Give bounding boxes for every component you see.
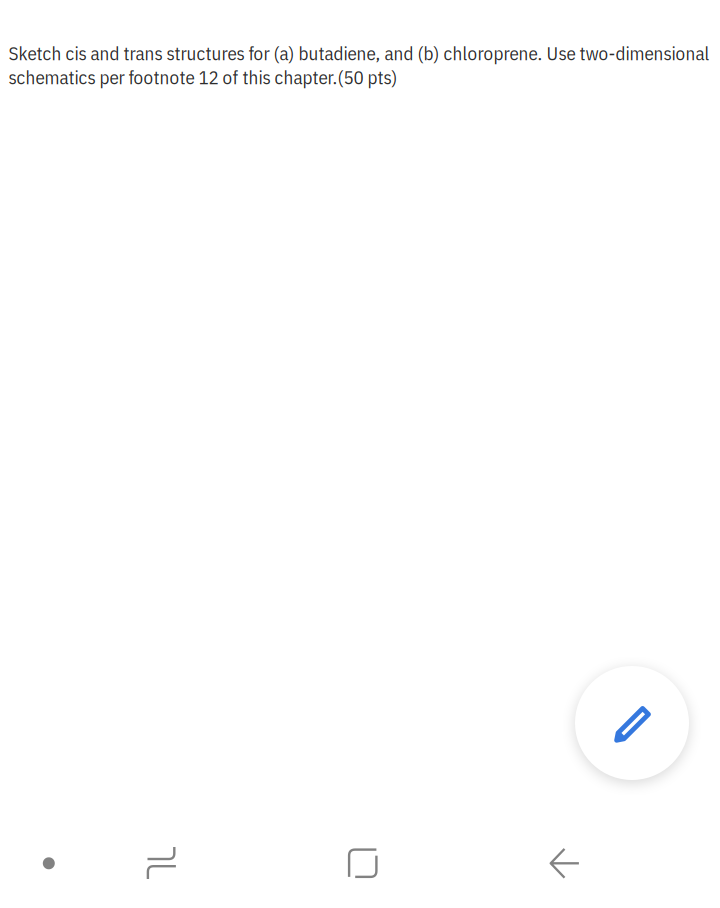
staticText: schematics per footnote 12 of this chapt…: [8, 65, 397, 89]
button[interactable]: Edit: [575, 666, 689, 780]
staticText: Sketch cis and trans structures for (a) …: [8, 41, 709, 65]
button[interactable]: Back: [499, 820, 631, 906]
button[interactable]: Assistant: [1, 820, 97, 906]
button[interactable]: Switch apps: [97, 820, 227, 906]
button[interactable]: Home: [227, 820, 499, 906]
